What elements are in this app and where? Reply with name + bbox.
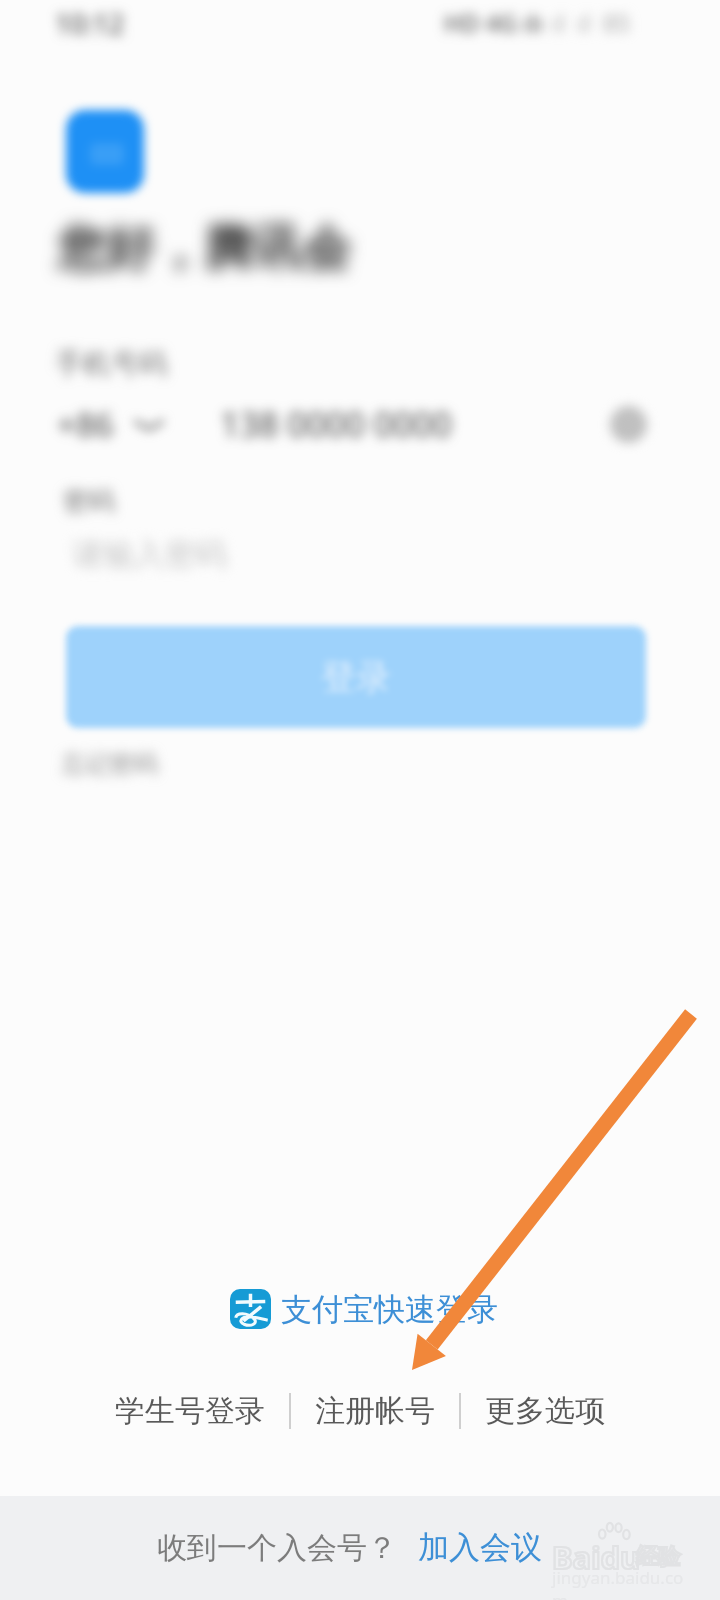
staticText: 学生号登录: [115, 1392, 265, 1430]
button[interactable]: 138 0000 0000: [220, 399, 606, 449]
staticText: 收到一个入会号？: [157, 1529, 397, 1567]
staticText: 支付宝快速登录: [281, 1290, 498, 1329]
button[interactable]: 请输入密码: [66, 528, 646, 574]
staticText: 手机号码: [55, 346, 167, 381]
staticText: 请输入密码: [72, 535, 227, 574]
button[interactable]: 加入会议: [418, 1528, 542, 1567]
staticText: 经验: [636, 1543, 680, 1571]
staticText: HD 4G ılı: [444, 6, 543, 39]
other: Choose country code: [134, 414, 164, 436]
staticText: 10:12: [55, 5, 125, 42]
button[interactable]: 支付宝快速登录: [4, 1289, 720, 1329]
staticText: ıl ıl 85: [552, 6, 631, 39]
button[interactable]: 登录: [66, 626, 646, 728]
staticText: 密码: [63, 485, 115, 518]
staticText: +86: [57, 402, 114, 447]
button[interactable]: Clear text: [600, 399, 656, 449]
staticText: 注册帐号: [315, 1392, 435, 1430]
button[interactable]: 忘记密码: [62, 749, 158, 779]
staticText: jingyan.baidu.com: [552, 1566, 684, 1600]
staticText: 更多选项: [485, 1392, 605, 1430]
staticText: Baidu: [552, 1536, 641, 1578]
button[interactable]: 更多选项: [485, 1392, 605, 1430]
button[interactable]: 注册帐号: [315, 1392, 435, 1430]
button[interactable]: 学生号登录: [115, 1392, 265, 1430]
button[interactable]: +86: [61, 402, 164, 447]
staticText: 登录: [321, 655, 391, 699]
staticText: 138 0000 0000: [220, 401, 452, 447]
staticText: 您好，腾讯会: [57, 218, 351, 280]
